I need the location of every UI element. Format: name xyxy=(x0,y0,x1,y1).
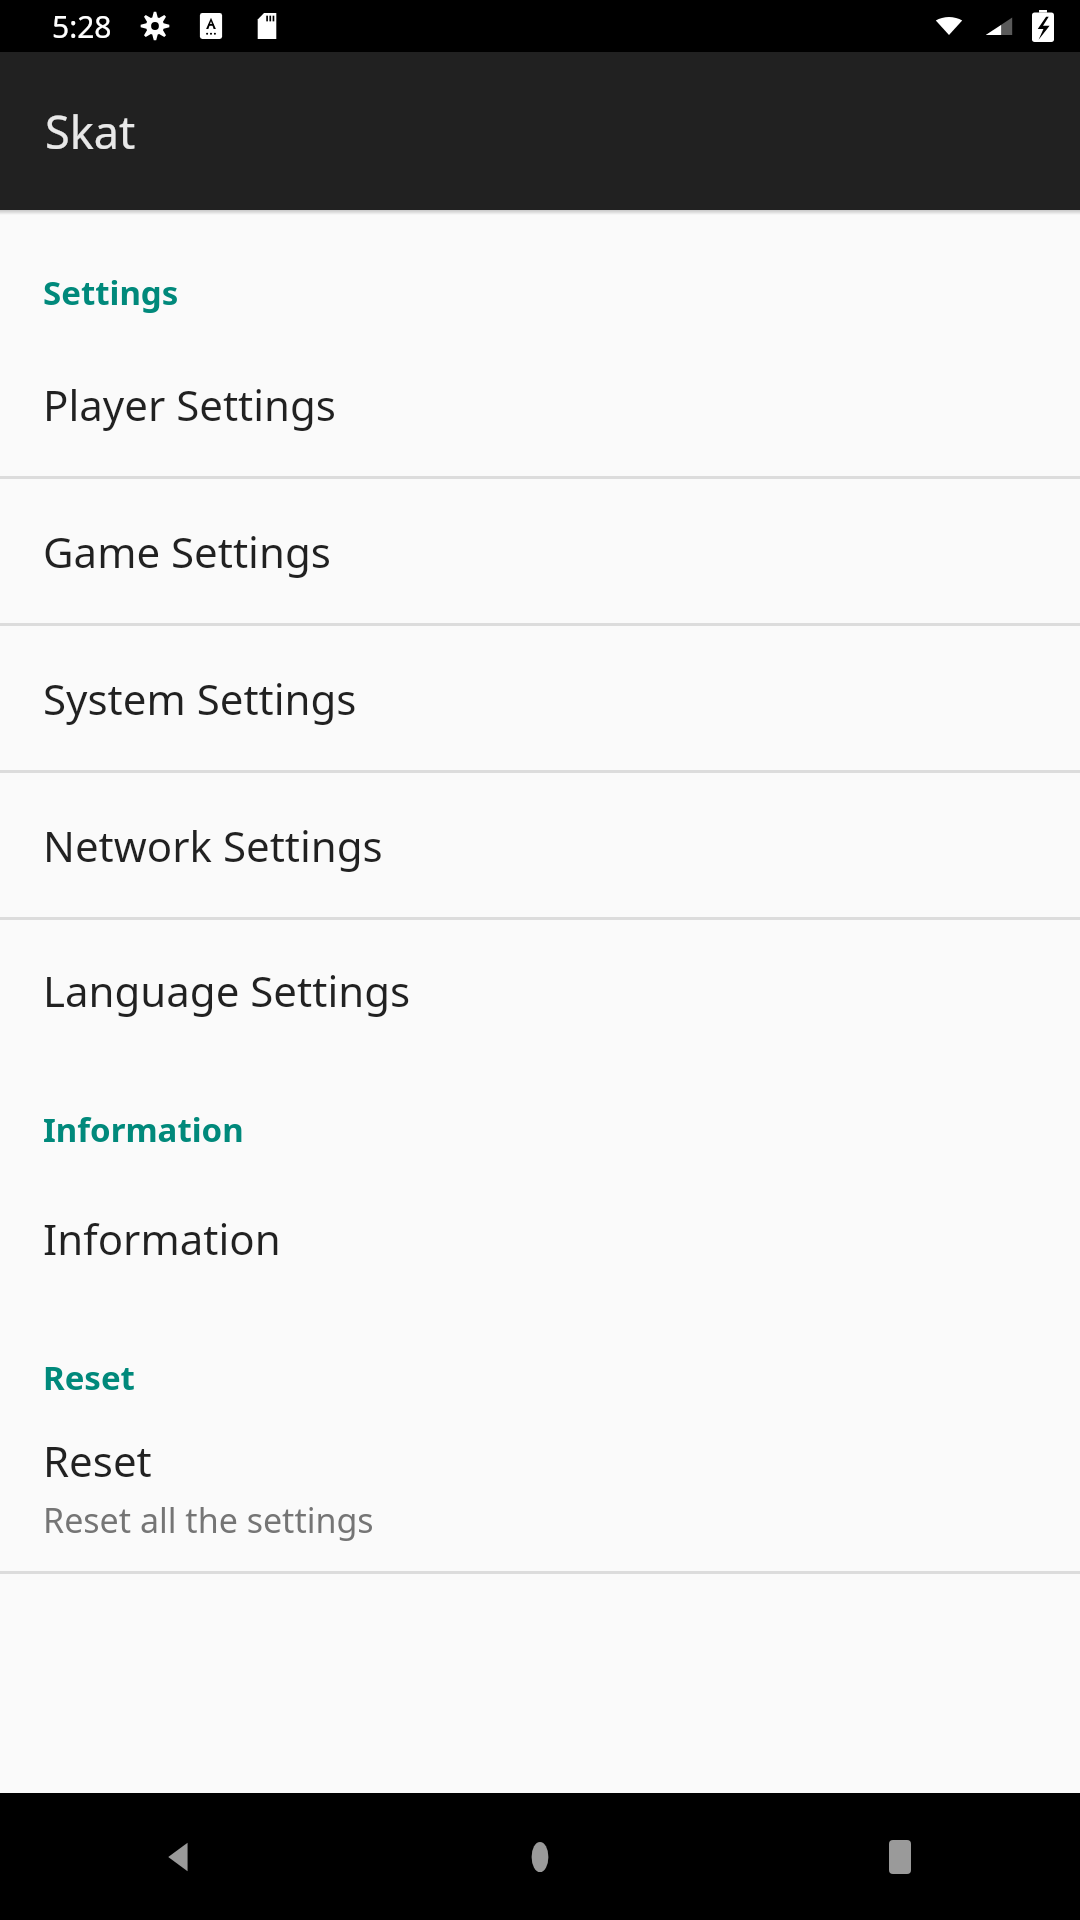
staticText: Network Settings xyxy=(43,817,383,874)
button[interactable]: Home xyxy=(360,1793,720,1920)
staticText: Settings xyxy=(43,270,179,315)
staticText: Information xyxy=(43,1210,281,1267)
staticText: Language Settings xyxy=(43,962,411,1019)
button[interactable]: Network Settings xyxy=(0,773,1080,917)
staticText: Skat xyxy=(45,101,136,162)
button[interactable]: Reset xyxy=(0,1416,1080,1571)
staticText: 5:28 xyxy=(52,6,112,47)
staticText: Player Settings xyxy=(43,376,336,433)
staticText: Game Settings xyxy=(43,523,331,580)
button[interactable]: System Settings xyxy=(0,626,1080,770)
staticText: System Settings xyxy=(43,670,357,727)
button[interactable]: Game Settings xyxy=(0,479,1080,623)
staticText: Reset xyxy=(43,1432,152,1489)
button[interactable]: Player Settings xyxy=(0,333,1080,476)
button[interactable]: Information xyxy=(0,1168,1080,1308)
button[interactable]: Recent apps xyxy=(720,1793,1080,1920)
button[interactable]: Back xyxy=(0,1793,360,1920)
button[interactable]: Language Settings xyxy=(0,920,1080,1060)
staticText: Reset all the settings xyxy=(43,1497,374,1543)
staticText: Information xyxy=(43,1107,244,1152)
staticText: Reset xyxy=(43,1355,135,1400)
